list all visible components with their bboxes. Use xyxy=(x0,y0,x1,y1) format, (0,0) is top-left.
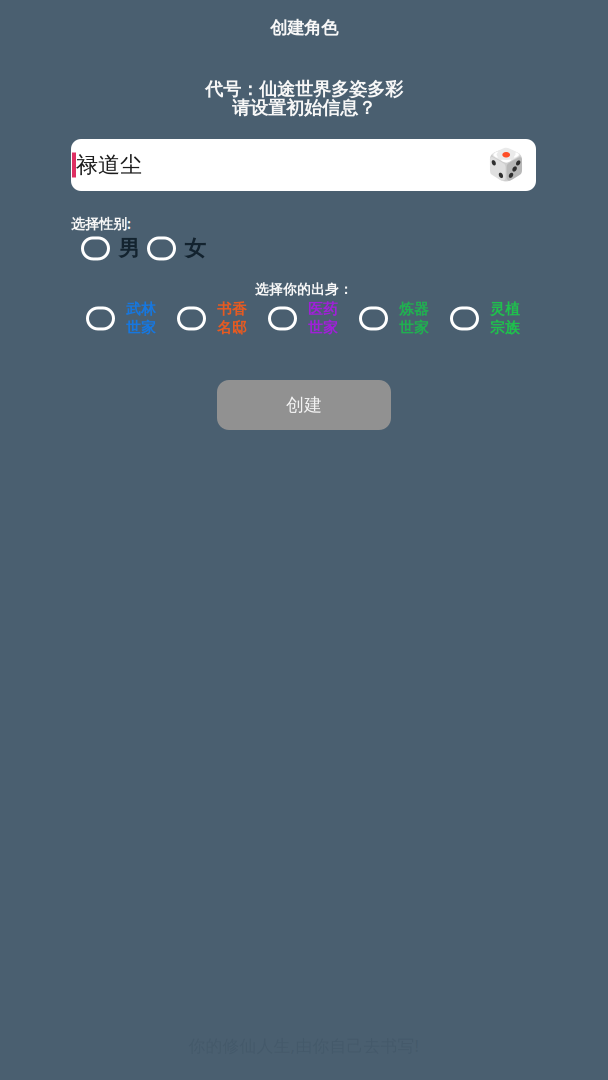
button[interactable]: 男 xyxy=(81,235,147,262)
staticText: 选择你的出身： xyxy=(255,281,353,298)
staticText: 灵植 宗族 xyxy=(490,300,520,337)
staticText: 禄道尘 xyxy=(76,151,142,179)
staticText: 武林 世家 xyxy=(126,300,156,337)
button[interactable]: 女 xyxy=(147,235,213,262)
button[interactable]: 炼器 世家 xyxy=(359,300,450,337)
button[interactable]: 灵植 宗族 xyxy=(450,300,541,337)
button[interactable]: 武林 世家 xyxy=(86,300,177,337)
staticText: 创建 xyxy=(286,394,322,416)
staticText: 医药 世家 xyxy=(308,300,338,337)
staticText: 代号：仙途世界多姿多彩 xyxy=(205,78,403,101)
button[interactable]: 禄道尘 xyxy=(71,139,536,191)
staticText: 🎲 xyxy=(487,147,525,183)
staticText: 书香 名邸 xyxy=(217,300,247,337)
staticText: 创建角色 xyxy=(270,17,338,39)
staticText: 男 xyxy=(118,235,139,262)
staticText: 炼器 世家 xyxy=(399,300,429,337)
button[interactable]: 创建 xyxy=(217,380,391,430)
button[interactable]: 医药 世家 xyxy=(268,300,359,337)
staticText: 女 xyxy=(184,235,205,262)
staticText: 请设置初始信息？ xyxy=(232,97,376,119)
button[interactable]: 书香 名邸 xyxy=(177,300,268,337)
staticText: 选择性别: xyxy=(71,214,131,233)
